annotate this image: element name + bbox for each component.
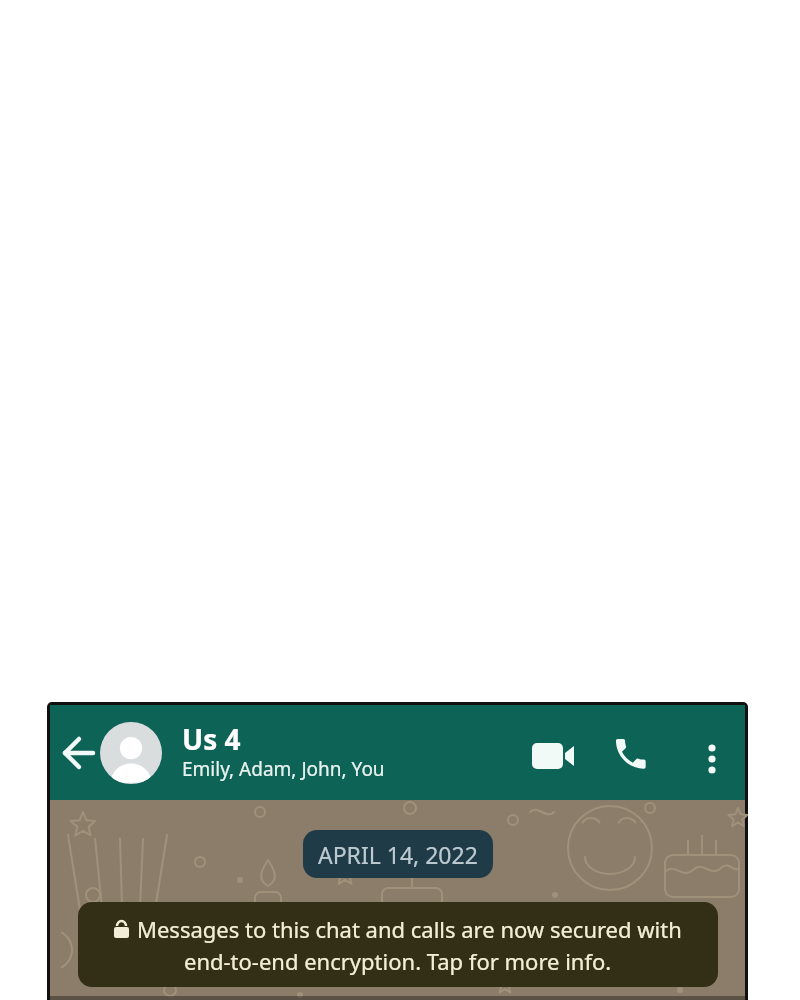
button[interactable] <box>605 728 657 780</box>
staticText: Emily, Adam, John, You <box>182 756 385 782</box>
button[interactable] <box>100 722 162 784</box>
staticText: end-to-end encryption. Tap for more info… <box>184 946 612 976</box>
staticText: Us 4 <box>182 720 241 758</box>
staticText: APRIL 14, 2022 <box>318 839 478 870</box>
button[interactable]: APRIL 14, 2022 <box>303 830 493 878</box>
button[interactable] <box>527 732 581 780</box>
button[interactable]: Messages to this chat and calls are now … <box>78 902 718 987</box>
button[interactable] <box>58 732 100 774</box>
button[interactable]: Us 4 <box>182 705 512 800</box>
button[interactable] <box>692 733 732 785</box>
staticText: Messages to this chat and calls are now … <box>137 914 682 944</box>
